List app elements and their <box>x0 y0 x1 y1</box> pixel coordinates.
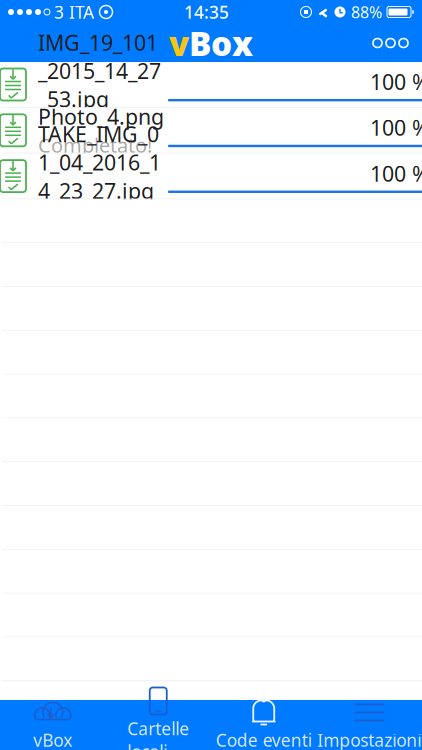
staticText: 100 % <box>370 159 422 187</box>
staticText: Photo_4.png <box>38 102 164 131</box>
staticText: Code eventi <box>216 728 312 750</box>
button[interactable]: Code eventi <box>211 700 316 750</box>
staticText: Impostazioni <box>317 728 421 750</box>
button[interactable]: More options <box>359 25 422 60</box>
staticText: IMG_19_101_2015_14_27_53.jpg <box>38 28 161 113</box>
staticText: Cartelle locali <box>127 717 189 750</box>
button[interactable]: IMG_19_101_2015_14_27_53.jpg <box>0 62 422 108</box>
staticText: Completato! <box>38 114 152 141</box>
button[interactable]: Photo_4.png <box>0 108 422 154</box>
button[interactable]: TAKE_IMG_01_04_2016_14_23_27.jpg <box>0 154 422 199</box>
staticText: 100 % <box>370 113 422 142</box>
staticText: TAKE_IMG_01_04_2016_14_23_27.jpg <box>38 120 161 205</box>
button[interactable]: Cartelle locali <box>105 700 211 750</box>
staticText: 14:35 <box>184 0 229 23</box>
button[interactable]: Impostazioni <box>316 700 422 750</box>
staticText: 88% <box>351 1 382 23</box>
staticText: vBox <box>33 728 72 750</box>
staticText: 3 ITA <box>54 0 94 23</box>
button[interactable]: vBox <box>0 700 105 750</box>
staticText: v <box>169 21 189 65</box>
staticText: 100 % <box>370 68 422 96</box>
staticText: Box <box>189 21 253 65</box>
staticText: Completato! <box>38 132 152 158</box>
